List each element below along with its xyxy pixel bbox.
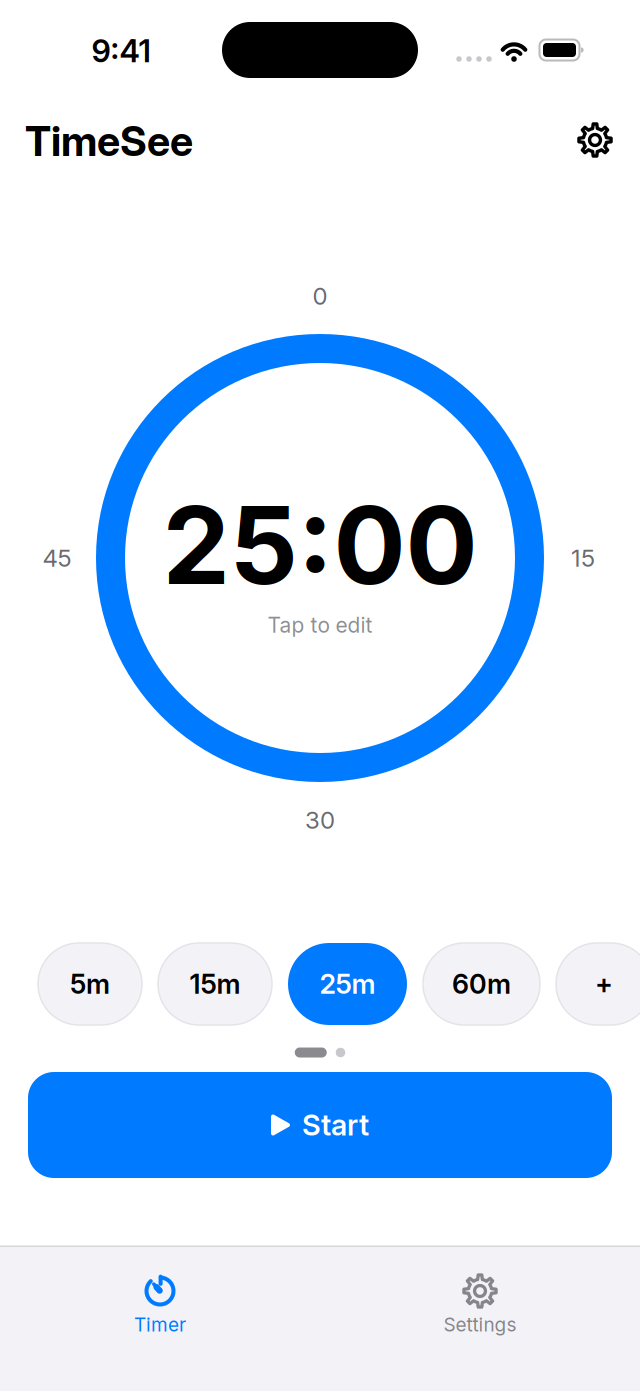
staticText: Timer bbox=[134, 1313, 186, 1336]
button[interactable]: Timer bbox=[0, 1247, 320, 1391]
staticText: + bbox=[595, 968, 613, 1000]
staticText: 0 bbox=[312, 281, 327, 310]
staticText: 5m bbox=[70, 968, 110, 1000]
staticText: 25:00 bbox=[162, 480, 477, 610]
staticText: TimeSee bbox=[25, 116, 193, 166]
button[interactable]: 5m bbox=[38, 943, 142, 1025]
button[interactable]: + bbox=[556, 943, 640, 1025]
staticText: Start bbox=[302, 1107, 369, 1143]
staticText: 15m bbox=[189, 968, 240, 1000]
staticText: 60m bbox=[452, 968, 511, 1000]
button[interactable] bbox=[578, 123, 612, 157]
button[interactable]: 60m bbox=[423, 943, 540, 1025]
staticText: Tap to edit bbox=[267, 612, 372, 638]
button[interactable]: 25:00 bbox=[60, 440, 580, 690]
staticText: 9:41 bbox=[91, 32, 150, 70]
button[interactable]: 15m bbox=[158, 943, 272, 1025]
staticText: 45 bbox=[42, 543, 71, 572]
staticText: 30 bbox=[305, 805, 335, 834]
button[interactable]: Settings bbox=[320, 1247, 640, 1391]
staticText: 15 bbox=[571, 543, 595, 572]
staticText: 25m bbox=[319, 968, 375, 1000]
staticText: Settings bbox=[443, 1313, 516, 1336]
button[interactable]: Start bbox=[28, 1072, 612, 1178]
button[interactable]: 25m bbox=[288, 943, 407, 1025]
